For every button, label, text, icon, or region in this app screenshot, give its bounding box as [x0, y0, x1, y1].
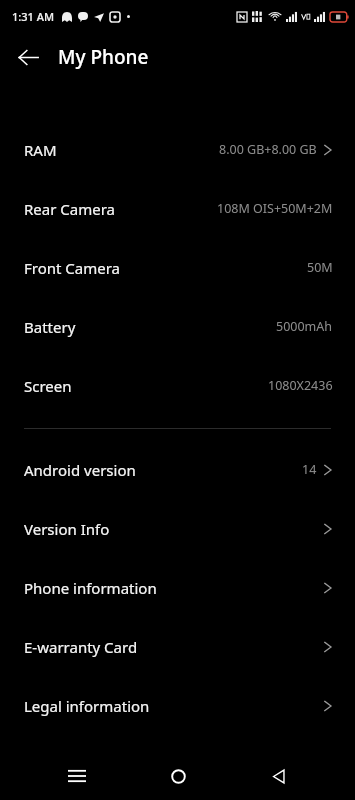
button[interactable]: Rear Camera: [0, 179, 355, 238]
button[interactable]: Battery: [0, 297, 355, 356]
staticText: 50M: [307, 259, 333, 276]
button[interactable]: Screen: [0, 356, 355, 415]
staticText: Screen: [24, 376, 72, 396]
staticText: 1080X2436: [268, 377, 333, 394]
button[interactable]: Back: [10, 39, 46, 75]
staticText: 5000mAh: [276, 318, 333, 335]
button[interactable]: Back: [254, 752, 302, 800]
button[interactable]: Version Info: [0, 499, 355, 558]
button[interactable]: Legal information: [0, 676, 355, 735]
staticText: E-warranty Card: [24, 637, 138, 657]
staticText: 14: [302, 461, 317, 478]
button[interactable]: Home: [154, 752, 202, 800]
staticText: Rear Camera: [24, 199, 115, 219]
staticText: 108M OIS+50M+2M: [217, 200, 333, 217]
button[interactable]: RAM: [0, 120, 355, 179]
button[interactable]: Phone information: [0, 558, 355, 617]
staticText: Version Info: [24, 519, 110, 539]
button[interactable]: Recent apps: [53, 752, 101, 800]
staticText: My Phone: [58, 44, 149, 70]
staticText: 1:31 AM: [12, 9, 55, 24]
staticText: RAM: [24, 140, 57, 160]
staticText: 8.00 GB+8.00 GB: [219, 141, 317, 158]
staticText: Legal information: [24, 696, 150, 716]
staticText: Android version: [24, 460, 136, 480]
staticText: Front Camera: [24, 258, 121, 278]
button[interactable]: Android version: [0, 440, 355, 499]
button[interactable]: E-warranty Card: [0, 617, 355, 676]
staticText: Battery: [24, 317, 76, 337]
button[interactable]: Front Camera: [0, 238, 355, 297]
staticText: Phone information: [24, 578, 157, 598]
